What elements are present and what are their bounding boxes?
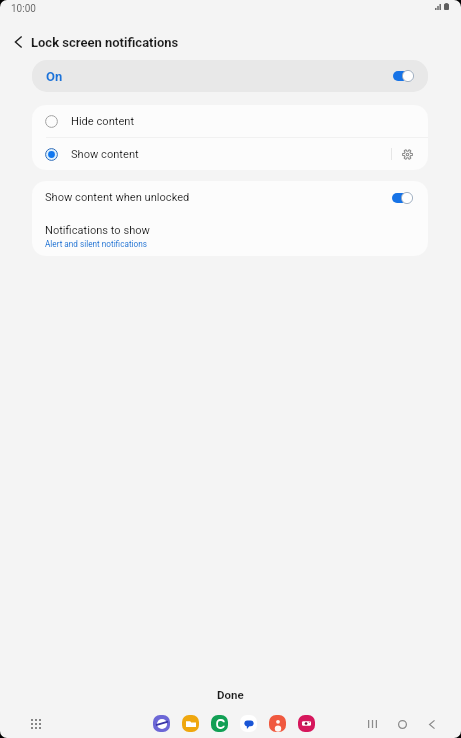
button[interactable]: Back bbox=[3, 27, 34, 56]
button[interactable]: Notifications to show bbox=[32, 214, 428, 256]
button[interactable]: Show content bbox=[32, 138, 428, 170]
staticText: Show content when unlocked bbox=[45, 191, 190, 204]
button[interactable]: Recents bbox=[363, 715, 381, 733]
button[interactable]: Hide content bbox=[32, 105, 428, 137]
staticText: Alert and silent notifications bbox=[45, 239, 147, 249]
staticText: Done bbox=[217, 688, 244, 701]
button[interactable]: Show content when unlocked bbox=[32, 181, 428, 214]
staticText: 10:00 bbox=[11, 3, 36, 15]
button[interactable]: Home bbox=[393, 715, 411, 733]
staticText: Lock screen notifications bbox=[31, 35, 179, 50]
button[interactable]: Back bbox=[423, 715, 441, 733]
staticText: Hide content bbox=[71, 115, 135, 128]
button[interactable]: On bbox=[32, 60, 428, 92]
staticText: Notifications to show bbox=[45, 224, 150, 237]
button[interactable]: Contacts bbox=[269, 715, 286, 732]
button[interactable]: Settings bbox=[392, 138, 428, 170]
button[interactable]: Apps bbox=[26, 714, 45, 733]
button[interactable]: Camera bbox=[298, 715, 315, 732]
staticText: Show content bbox=[71, 148, 139, 161]
button[interactable]: Phone bbox=[211, 715, 228, 732]
button[interactable]: My Files bbox=[182, 715, 199, 732]
staticText: On bbox=[46, 69, 63, 84]
button[interactable]: Internet bbox=[153, 715, 170, 732]
button[interactable]: Done bbox=[0, 680, 461, 709]
button[interactable]: Messages bbox=[240, 715, 257, 732]
